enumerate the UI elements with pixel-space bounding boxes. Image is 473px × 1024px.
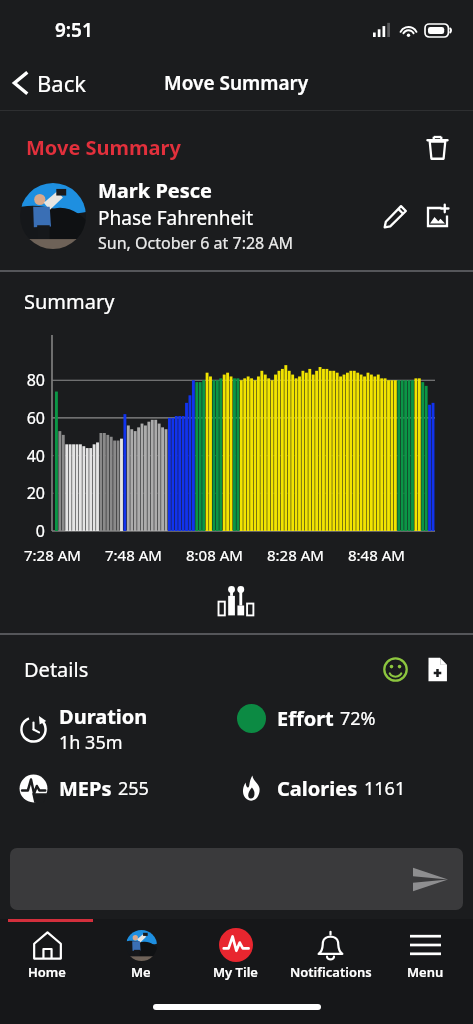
button[interactable]: Notifications bbox=[283, 922, 378, 990]
staticText: MEPs bbox=[59, 775, 112, 802]
staticText: Back bbox=[37, 68, 86, 98]
staticText: Effort bbox=[277, 705, 334, 732]
staticText: Summary bbox=[24, 288, 115, 315]
button[interactable]: Add photo bbox=[417, 196, 457, 236]
button[interactable]: Rate feeling bbox=[375, 649, 415, 689]
staticText: 80 bbox=[0, 369, 45, 391]
staticText: 0 bbox=[0, 520, 45, 542]
staticText: 8:48 AM bbox=[348, 545, 405, 565]
staticText: Menu bbox=[407, 963, 444, 981]
button[interactable]: My Tile bbox=[188, 922, 283, 990]
staticText: Duration bbox=[59, 703, 148, 730]
staticText: Phase Fahrenheit bbox=[98, 205, 254, 231]
staticText: Notifications bbox=[290, 963, 372, 981]
button[interactable]: Menu bbox=[378, 922, 473, 990]
button[interactable]: Calories bbox=[236, 773, 473, 804]
staticText: 8:28 AM bbox=[267, 545, 324, 565]
other: Send bbox=[409, 858, 451, 900]
staticText: 9:51 bbox=[55, 17, 93, 43]
button[interactable]: Delete bbox=[417, 127, 457, 167]
staticText: 20 bbox=[0, 482, 45, 504]
button[interactable]: Me bbox=[94, 922, 188, 990]
staticText: 8:08 AM bbox=[186, 545, 243, 565]
button[interactable]: Edit bbox=[375, 196, 415, 236]
staticText: Home bbox=[28, 963, 66, 981]
staticText: 72% bbox=[340, 706, 376, 731]
staticText: Move Summary bbox=[164, 70, 309, 96]
staticText: 1161 bbox=[364, 776, 406, 801]
button[interactable]: Back bbox=[0, 56, 100, 110]
button[interactable]: Effort bbox=[236, 703, 473, 734]
staticText: My Tile bbox=[213, 963, 258, 981]
button[interactable]: Add note bbox=[417, 649, 457, 689]
staticText: Me bbox=[131, 963, 151, 981]
staticText: 7:48 AM bbox=[105, 545, 162, 565]
button[interactable]: MEPs bbox=[18, 773, 236, 804]
staticText: 255 bbox=[118, 776, 149, 801]
staticText: 40 bbox=[0, 445, 45, 467]
button[interactable]: Duration bbox=[18, 703, 236, 755]
staticText: Details bbox=[24, 656, 89, 683]
button[interactable]: Send bbox=[10, 848, 463, 910]
staticText: Sun, October 6 at 7:28 AM bbox=[98, 232, 294, 254]
staticText: 7:28 AM bbox=[24, 545, 81, 565]
staticText: Move Summary bbox=[26, 134, 181, 161]
staticText: 1h 35m bbox=[59, 730, 123, 755]
staticText: 60 bbox=[0, 407, 45, 429]
staticText: Calories bbox=[277, 775, 358, 802]
staticText: Mark Pesce bbox=[98, 177, 213, 204]
button[interactable]: Chart options bbox=[209, 579, 265, 623]
button[interactable]: Home bbox=[0, 922, 94, 990]
